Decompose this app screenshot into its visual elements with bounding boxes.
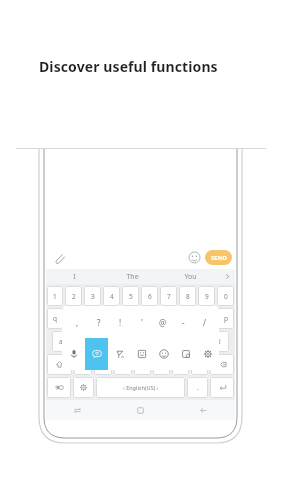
button[interactable]: h	[151, 331, 169, 352]
button[interactable]: b	[153, 354, 170, 375]
button[interactable]: 9	[198, 286, 215, 306]
button[interactable]: p	[217, 308, 234, 329]
button[interactable]: Emoji	[153, 338, 175, 370]
button[interactable]: d	[91, 331, 109, 352]
staticText: l	[219, 337, 221, 346]
button[interactable]: /	[194, 306, 215, 338]
staticText: '	[141, 317, 143, 328]
staticText: p	[224, 314, 228, 323]
button[interactable]: !	[110, 306, 131, 338]
staticText: !	[119, 317, 122, 328]
button[interactable]: e	[84, 308, 101, 329]
button[interactable]: m	[191, 354, 208, 375]
button[interactable]: The	[103, 269, 161, 284]
button[interactable]: Enter	[210, 377, 234, 398]
staticText: -	[182, 317, 185, 328]
button[interactable]: x	[94, 354, 112, 375]
button[interactable]: Keyboard settings	[73, 377, 94, 398]
button[interactable]: @	[152, 306, 173, 338]
staticText: 7	[167, 292, 171, 301]
button[interactable]: 7	[160, 286, 177, 306]
button[interactable]: Emoticons	[131, 338, 153, 370]
button[interactable]: v	[134, 354, 151, 375]
button[interactable]: i	[179, 308, 196, 329]
button[interactable]: SEND	[205, 250, 232, 265]
button[interactable]: Clipboard	[175, 338, 197, 370]
button[interactable]: Back	[172, 400, 235, 420]
button[interactable]: g	[131, 331, 149, 352]
staticText: 0	[224, 292, 228, 301]
button[interactable]: 6	[141, 286, 158, 306]
button[interactable]: 0	[217, 286, 234, 306]
staticText: d	[98, 337, 102, 346]
button[interactable]: Symbols	[47, 377, 71, 398]
button[interactable]: l	[211, 331, 229, 352]
button[interactable]: .	[187, 377, 208, 398]
button[interactable]: u	[160, 308, 177, 329]
button[interactable]: Attach	[50, 248, 68, 266]
button[interactable]: c	[114, 354, 132, 375]
button[interactable]: 3	[84, 286, 101, 306]
button[interactable]: Backspace	[210, 354, 234, 375]
button[interactable]: ,	[66, 306, 88, 338]
button[interactable]: 1	[47, 286, 63, 306]
button[interactable]: z	[74, 354, 92, 375]
button[interactable]: ?	[88, 306, 110, 338]
button[interactable]: Home	[109, 400, 172, 420]
staticText: q	[53, 314, 57, 323]
button[interactable]: Handwriting	[108, 338, 131, 370]
staticText: 2	[72, 292, 76, 301]
button[interactable]: w	[65, 308, 82, 329]
button[interactable]: y	[141, 308, 158, 329]
button[interactable]: I	[46, 269, 103, 284]
staticText: ‹ English(US) ›	[123, 384, 159, 391]
button[interactable]: More suggestions	[219, 269, 235, 284]
button[interactable]: q	[47, 308, 63, 329]
staticText: The	[126, 272, 139, 282]
button[interactable]: ‹ English(US) ›	[96, 377, 185, 398]
staticText: 3	[91, 292, 95, 301]
staticText: 6	[148, 292, 152, 301]
button[interactable]: 8	[179, 286, 196, 306]
staticText: ?	[97, 317, 101, 328]
button[interactable]: j	[171, 331, 189, 352]
button[interactable]: '	[131, 306, 152, 338]
button[interactable]: k	[191, 331, 209, 352]
button[interactable]: f	[111, 331, 129, 352]
button[interactable]: 2	[65, 286, 82, 306]
button[interactable]: Voice input	[62, 338, 85, 370]
button[interactable]: -	[173, 306, 194, 338]
button[interactable]: 5	[122, 286, 139, 306]
button[interactable]: Settings	[197, 338, 219, 370]
staticText: @	[159, 317, 167, 328]
button[interactable]: You	[161, 269, 219, 284]
staticText: a	[59, 337, 63, 346]
staticText: /	[203, 317, 206, 328]
button[interactable]: Emoji	[185, 248, 203, 266]
button[interactable]: r	[103, 308, 120, 329]
button[interactable]: o	[198, 308, 215, 329]
staticText: 4	[110, 292, 114, 301]
staticText: 1	[53, 292, 57, 301]
button[interactable]: Recents	[46, 400, 109, 420]
button[interactable]: s	[71, 331, 89, 352]
button[interactable]: 4	[103, 286, 120, 306]
button[interactable]: a	[52, 331, 69, 352]
button[interactable]: Shift	[47, 354, 72, 375]
button[interactable]: n	[172, 354, 189, 375]
staticText: ,	[76, 317, 79, 328]
staticText: Discover useful functions	[39, 57, 218, 76]
button[interactable]: Stickers	[85, 338, 108, 370]
